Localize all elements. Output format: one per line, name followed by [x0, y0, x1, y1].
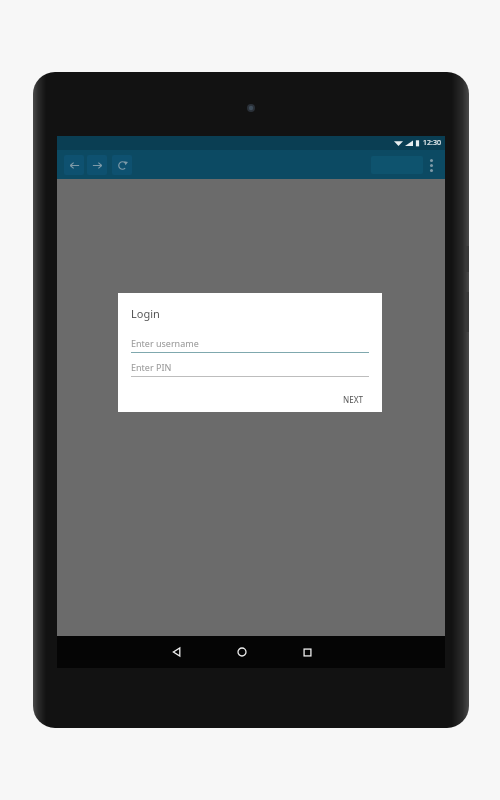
staticText: NEXT [343, 394, 364, 405]
button[interactable]: Recent apps [292, 637, 322, 667]
button[interactable]: Enter username [131, 337, 369, 353]
button[interactable]: Reload [112, 155, 132, 175]
button[interactable]: NEXT [338, 391, 369, 408]
button[interactable]: Back [64, 155, 84, 175]
button[interactable]: Home [227, 637, 257, 667]
staticText: Enter PIN [131, 361, 172, 373]
button[interactable]: Enter PIN [131, 361, 369, 377]
button[interactable]: Forward [87, 155, 107, 175]
staticText: Login [131, 306, 160, 321]
staticText: Enter username [131, 337, 199, 349]
staticText: 12:30 [423, 138, 441, 148]
button[interactable]: More options [423, 153, 439, 177]
button[interactable]: Back [162, 637, 192, 667]
